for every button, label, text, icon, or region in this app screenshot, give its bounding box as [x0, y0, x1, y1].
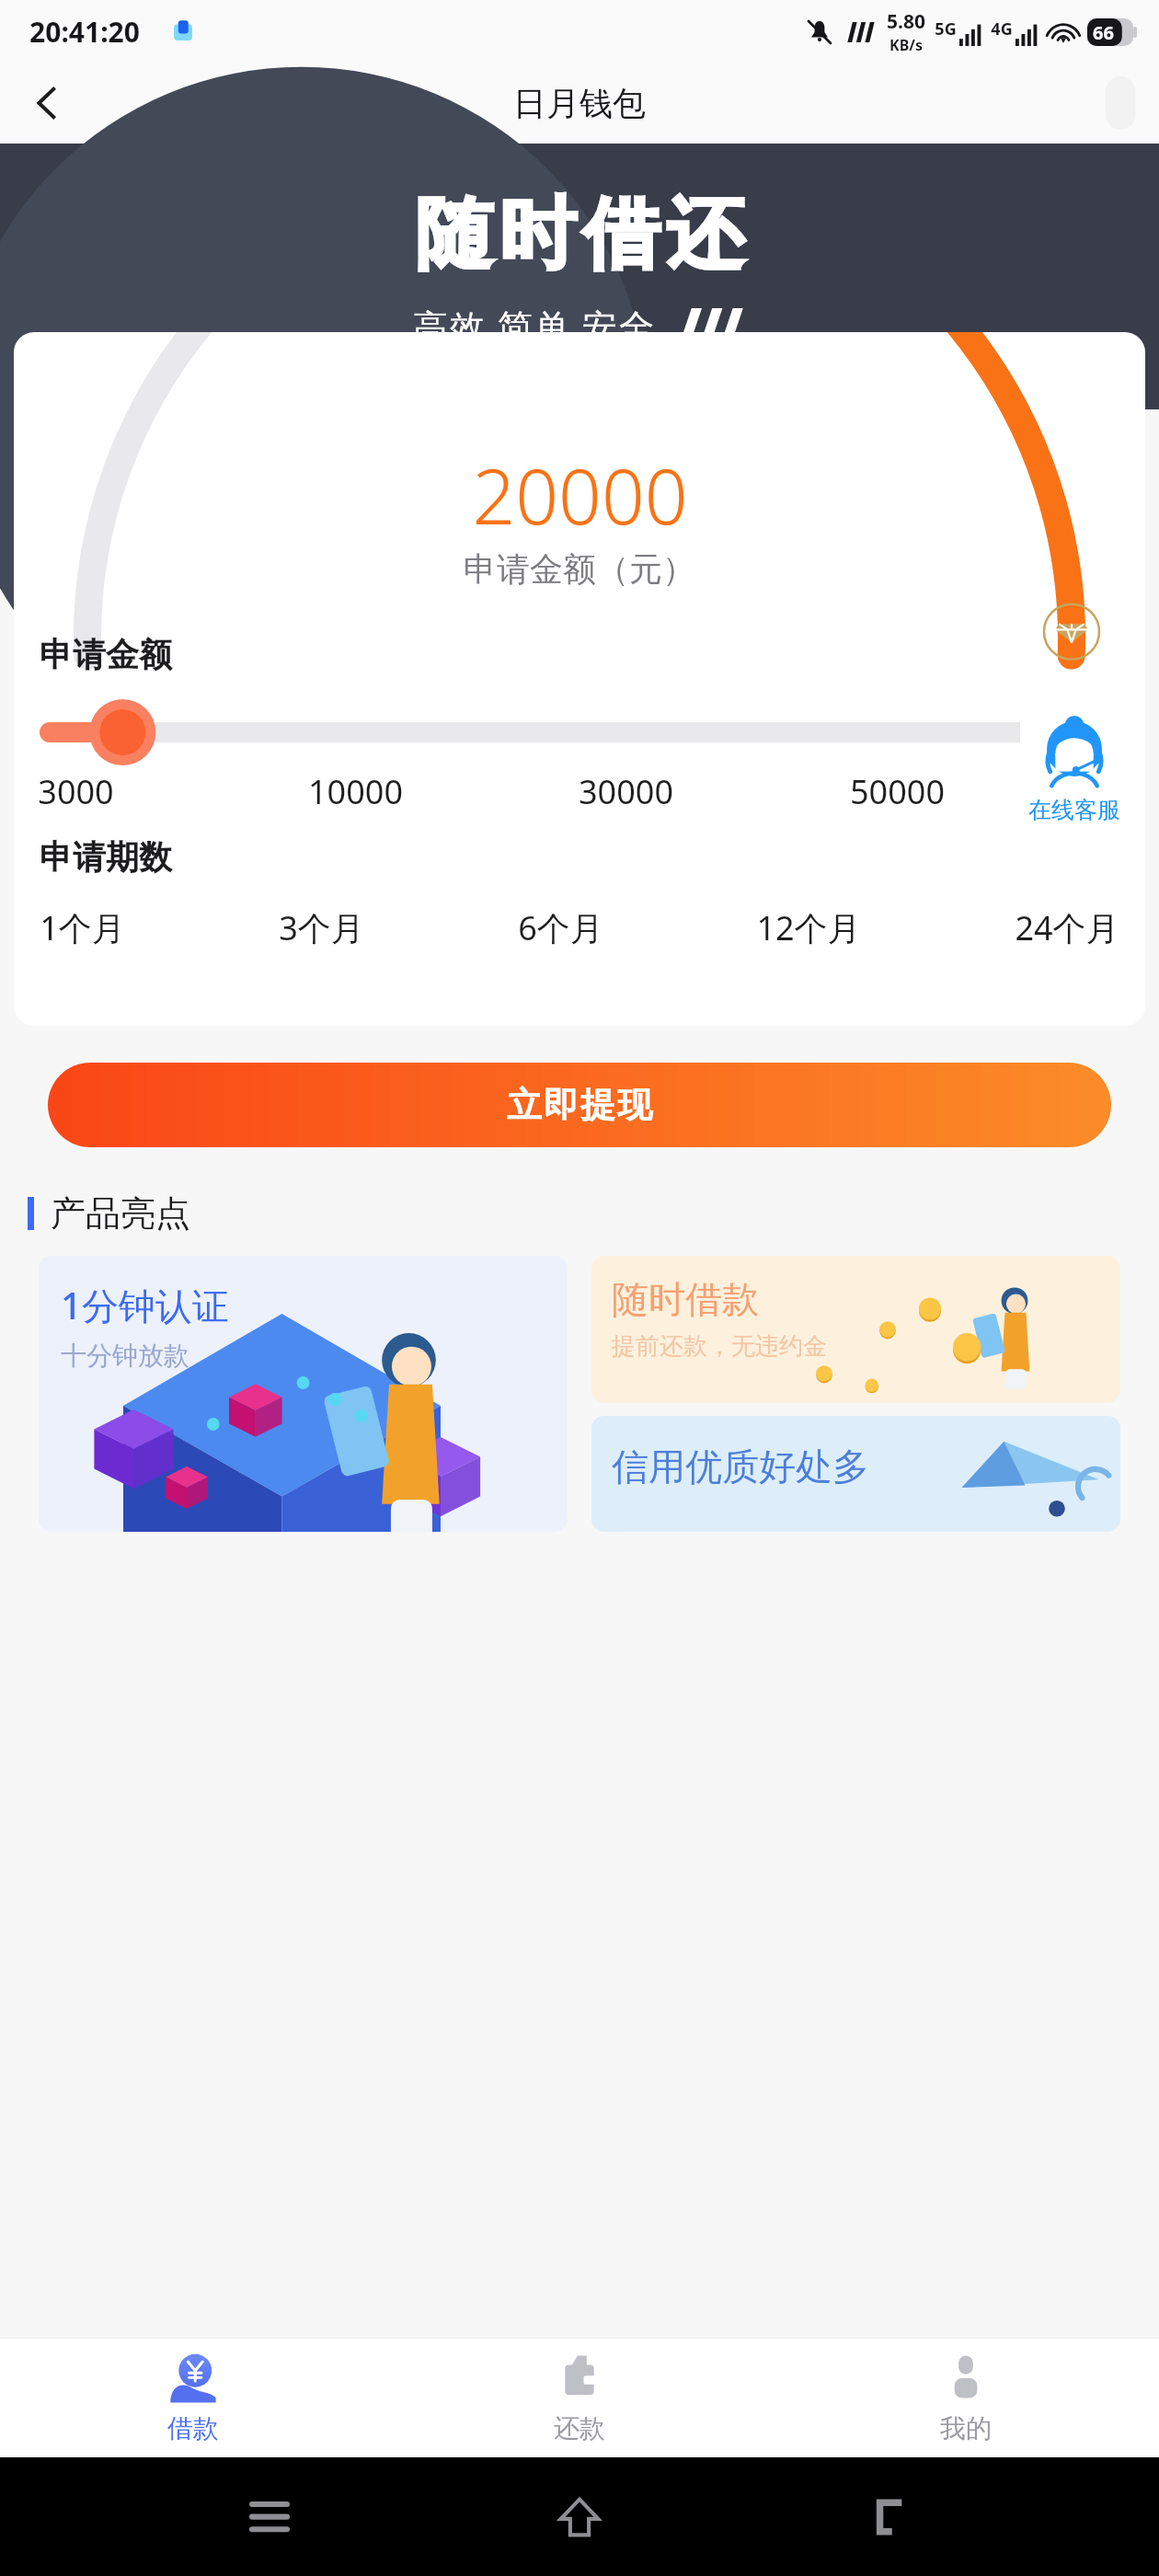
staticText: 12个月	[756, 905, 861, 950]
staticText: 5G	[935, 17, 957, 40]
staticText: 十分钟放款	[61, 1340, 189, 1372]
button[interactable]: 申请金额滑块	[40, 710, 1119, 754]
button[interactable]: Home	[538, 2476, 621, 2559]
staticText: 10000	[308, 769, 403, 814]
staticText: 6个月	[518, 905, 603, 950]
staticText: 20:41:20	[29, 13, 140, 51]
button[interactable]: 随时借款	[591, 1256, 1120, 1403]
button[interactable]: 6个月	[512, 902, 609, 954]
button[interactable]: Back	[849, 2476, 932, 2559]
button[interactable]: 立即提现	[48, 1063, 1111, 1147]
staticText: 3个月	[279, 905, 364, 950]
staticText: 3000	[38, 769, 114, 814]
button[interactable]: 12个月	[751, 902, 866, 954]
button[interactable]: 借款	[0, 2339, 386, 2457]
staticText: 日月钱包	[513, 83, 646, 124]
button[interactable]: 24个月	[1009, 902, 1125, 954]
staticText: 提前还款，无违约金	[612, 1331, 827, 1362]
button[interactable]: 在线客服	[1020, 700, 1129, 838]
staticText: 66	[1093, 20, 1114, 45]
button[interactable]: 还款	[386, 2339, 773, 2457]
staticText: 1个月	[40, 905, 125, 950]
staticText: 立即提现	[506, 1083, 653, 1127]
staticText: 1分钟认证	[61, 1280, 229, 1330]
staticText: 申请金额	[40, 634, 172, 675]
staticText: 20000	[472, 443, 688, 546]
staticText: 申请金额（元）	[464, 548, 695, 590]
staticText: 随时借还	[412, 186, 747, 283]
staticText: 还款	[554, 2412, 605, 2444]
staticText: 申请期数	[40, 836, 172, 878]
button[interactable]: 我的	[773, 2339, 1159, 2457]
staticText: 5.80	[887, 8, 925, 35]
button[interactable]: 信用优质好处多	[591, 1416, 1120, 1532]
button[interactable]: Back	[13, 69, 81, 137]
staticText: 4G	[991, 17, 1013, 40]
staticText: KB/s	[889, 35, 923, 55]
button[interactable]: Recents	[228, 2476, 311, 2559]
button[interactable]: 1个月	[34, 902, 131, 954]
staticText: 50000	[850, 769, 945, 814]
staticText: 我的	[940, 2412, 992, 2444]
staticText: 信用优质好处多	[612, 1443, 869, 1489]
staticText: 在线客服	[1028, 796, 1120, 824]
staticText: 借款	[167, 2412, 219, 2444]
button[interactable]: 1分钟认证	[39, 1256, 568, 1532]
staticText: 24个月	[1015, 905, 1119, 950]
staticText: 产品亮点	[51, 1191, 190, 1236]
staticText: 随时借款	[612, 1276, 759, 1322]
button[interactable]: 3个月	[273, 902, 370, 954]
staticText: 高效 简单 安全	[413, 302, 656, 350]
staticText: 30000	[579, 769, 673, 814]
